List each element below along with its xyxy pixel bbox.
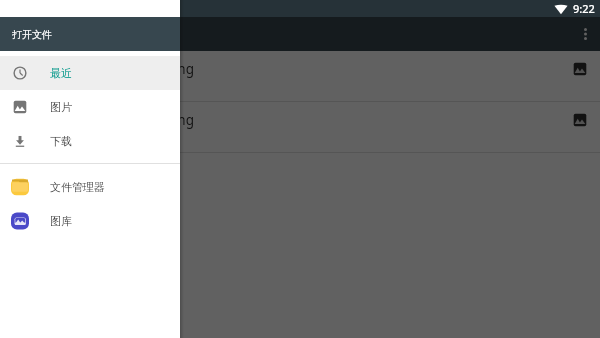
- button[interactable]: 最近: [0, 56, 180, 90]
- staticText: 图库: [50, 214, 72, 228]
- staticText: 9:22: [573, 1, 595, 16]
- button[interactable]: 02.png: [0, 102, 600, 152]
- staticText: 下载: [50, 134, 72, 148]
- button[interactable]: 图库: [0, 204, 180, 238]
- staticText: 01.png: [150, 60, 195, 78]
- staticText: 02.png: [150, 111, 195, 129]
- staticText: 文件管理器: [50, 180, 105, 194]
- staticText: 图片: [50, 100, 72, 114]
- button[interactable]: 图片: [0, 90, 180, 124]
- button[interactable]: 01.png: [0, 51, 600, 101]
- button[interactable]: More options: [570, 19, 600, 49]
- staticText: 最近: [50, 66, 72, 80]
- button[interactable]: 下载: [0, 124, 180, 158]
- button[interactable]: 文件管理器: [0, 170, 180, 204]
- staticText: 打开文件: [12, 28, 52, 41]
